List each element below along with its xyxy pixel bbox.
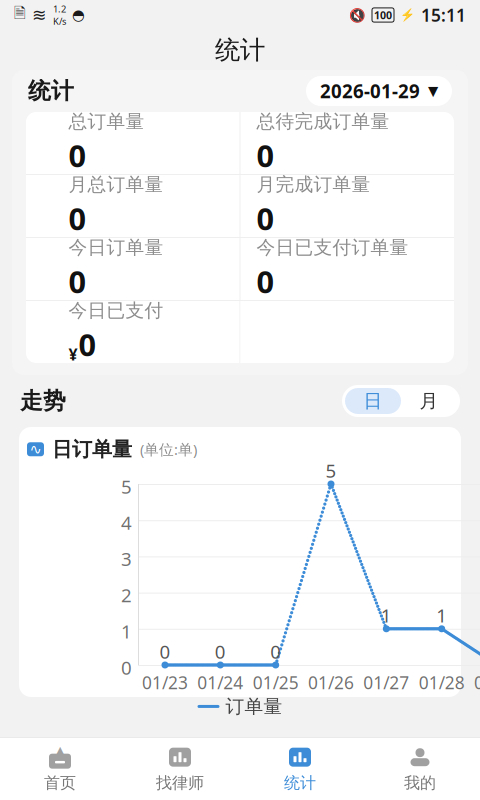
staticText: 今日已支付 <box>68 299 163 322</box>
staticText: 统计 <box>28 77 74 105</box>
staticText: 15:11 <box>421 3 466 26</box>
staticText: 5 <box>121 474 132 499</box>
button[interactable]: 统计 <box>240 741 360 797</box>
staticText: 0 <box>68 135 86 176</box>
staticText: 0 <box>270 639 281 664</box>
staticText: 0 <box>256 261 274 302</box>
staticText: ≋ <box>32 5 47 25</box>
staticText: 0 <box>256 135 274 176</box>
staticText: 今日已支付订单量 <box>256 236 408 259</box>
button[interactable]: 首页 <box>0 741 120 797</box>
staticText: 🔇 <box>349 7 366 23</box>
staticText: 01/23 <box>142 671 188 694</box>
staticText: 100 <box>374 8 392 22</box>
staticText: 月总订单量 <box>68 173 163 196</box>
staticText: 订单量 <box>225 695 282 718</box>
staticText: 我的 <box>404 773 436 793</box>
staticText: 01/27 <box>363 671 409 694</box>
staticText: 01/25 <box>253 671 299 694</box>
staticText: 2 <box>121 583 132 607</box>
staticText: 0 <box>68 261 86 302</box>
staticText: 3 <box>121 546 132 571</box>
staticText: ▲ <box>54 743 65 759</box>
staticText: 月 <box>419 389 438 412</box>
staticText: ◓ <box>72 7 85 23</box>
staticText: 总待完成订单量 <box>256 110 389 133</box>
staticText: K/s <box>53 15 66 27</box>
staticText: 0 <box>159 639 170 664</box>
staticText: 0 <box>121 655 132 680</box>
staticText: 01/28 <box>419 671 465 694</box>
staticText: 统计 <box>284 773 316 793</box>
staticText: 🗎 <box>14 3 26 27</box>
staticText: 日订单量 <box>52 437 132 462</box>
staticText: 月完成订单量 <box>256 173 370 196</box>
staticText: 统计 <box>215 34 265 65</box>
staticText: 1 <box>436 603 447 628</box>
staticText: 1 <box>381 603 392 628</box>
button[interactable]: 日 <box>345 388 401 414</box>
staticText: 总订单量 <box>68 110 144 133</box>
staticText: 走势 <box>20 387 66 415</box>
staticText: 5 <box>325 458 336 483</box>
button[interactable]: 找律师 <box>120 741 240 797</box>
staticText: ⚡ <box>400 8 415 22</box>
staticText: 01/29 <box>474 671 480 694</box>
button[interactable]: 我的 <box>360 741 480 797</box>
staticText: 今日订单量 <box>68 236 163 259</box>
staticText: (单位:单) <box>140 439 197 459</box>
staticText: 0 <box>78 324 96 365</box>
staticText: ∿ <box>29 441 41 458</box>
staticText: ¥ <box>68 344 77 365</box>
staticText: 0 <box>68 198 86 239</box>
staticText: 4 <box>121 510 132 535</box>
staticText: 1.2 <box>53 3 66 15</box>
staticText: 首页 <box>44 773 76 793</box>
staticText: 0 <box>215 639 226 664</box>
button[interactable]: 月 <box>401 388 457 414</box>
staticText: 01/24 <box>197 671 243 694</box>
staticText: 日 <box>363 389 382 412</box>
staticText: ▼ <box>428 83 438 98</box>
staticText: 01/26 <box>308 671 354 694</box>
staticText: 2026-01-29 <box>320 79 420 103</box>
button[interactable]: 选择日期 2026-01-29 <box>306 76 452 106</box>
staticText: 找律师 <box>156 773 204 793</box>
staticText: 0 <box>256 198 274 239</box>
staticText: 1 <box>121 619 132 644</box>
